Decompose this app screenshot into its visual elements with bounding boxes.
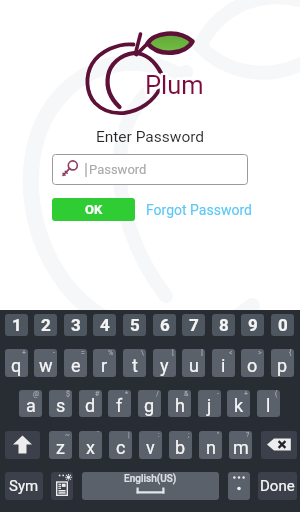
button[interactable]: a [19,390,42,417]
staticText: v [146,437,155,458]
staticText: 9 [248,315,258,335]
button[interactable]: 4 [93,314,116,336]
staticText: Plum [142,70,201,100]
button[interactable]: OK [52,198,135,221]
button[interactable]: i [212,349,235,377]
staticText: @ [33,390,40,398]
staticText: Forgot Password [146,202,252,218]
staticText: Plum [145,73,204,103]
staticText: { [289,349,292,357]
staticText: ~ [65,431,70,439]
button[interactable]: 6 [153,314,176,336]
button[interactable]: b [169,431,192,459]
button[interactable]: 5 [123,314,146,336]
staticText: [ [172,349,174,357]
button[interactable]: u [182,349,205,377]
staticText: 6 [160,315,170,335]
staticText: d [85,395,96,416]
staticText: Plum [145,72,204,102]
button[interactable]: v [139,431,162,459]
button[interactable]: k [227,390,250,417]
staticText: i [221,355,226,376]
button[interactable]: y [153,349,176,377]
button[interactable]: Password [52,154,248,185]
button[interactable]: h [168,390,191,417]
button[interactable]: s [49,390,72,417]
staticText: Sym [9,477,39,495]
button[interactable]: Forgot Password [146,198,256,221]
button[interactable]: z [49,431,72,459]
button[interactable]: Sym [5,472,43,500]
button[interactable]: l [257,390,280,417]
staticText: - [217,390,219,398]
button[interactable]: Backspace [261,431,297,459]
staticText: ? [246,431,250,439]
staticText: z [56,437,65,458]
button[interactable]: Done [258,472,297,500]
staticText: Plum [145,70,204,100]
staticText: English(US) [124,473,177,485]
button[interactable]: q [5,349,28,377]
staticText: = [81,349,85,357]
staticText: Plum [145,68,204,98]
button[interactable]: 1 [5,314,28,336]
staticText: Plum [146,70,205,100]
staticText: Plum [146,69,205,99]
button[interactable]: r [93,349,116,377]
staticText: % [108,349,114,357]
staticText: * [125,390,129,398]
button[interactable]: Shift [5,431,40,459]
staticText: & [184,390,189,398]
staticText: < [229,349,233,357]
button[interactable]: 7 [182,314,205,336]
staticText: p [277,355,288,376]
staticText: n [206,437,216,458]
button[interactable]: Input settings [51,472,73,500]
button[interactable]: m [229,431,252,459]
staticText: : [158,431,160,439]
staticText: OK [85,202,103,217]
button[interactable]: f [108,390,131,417]
button[interactable]: 8 [212,314,235,336]
button[interactable]: t [123,349,146,377]
staticText: o [247,355,258,376]
button[interactable]: 9 [241,314,264,336]
button[interactable]: x [79,431,102,459]
staticText: / [156,390,159,398]
staticText: Plum [146,72,205,102]
button[interactable]: 2 [34,314,57,336]
button[interactable]: n [199,431,222,459]
button[interactable]: Space [82,472,219,500]
staticText: Plum [146,68,205,98]
button[interactable]: j [198,390,221,417]
staticText: $ [66,390,70,398]
button[interactable]: p [271,349,294,377]
staticText: Enter Password [0,128,300,146]
staticText: ] [201,349,203,357]
staticText: Plum [148,70,207,100]
button[interactable]: Period [228,472,250,500]
staticText: r [101,355,108,376]
button[interactable]: 3 [64,314,87,336]
staticText: Plum [143,68,202,98]
staticText: 3 [71,315,81,335]
staticText: f [116,395,123,416]
staticText: Plum [144,71,203,101]
staticText: Plum [144,68,203,98]
button[interactable]: o [241,349,264,377]
button[interactable]: c [109,431,132,459]
staticText: u [189,355,199,376]
staticText: + [22,349,26,357]
button[interactable]: 0 [271,314,294,336]
staticText: - [53,349,55,357]
button[interactable]: g [138,390,161,417]
button[interactable]: w [34,349,57,377]
staticText: Plum [143,72,202,102]
staticText: l [266,395,271,416]
staticText: 4 [100,315,110,335]
button[interactable]: e [64,349,87,377]
staticText: Plum [145,70,204,100]
button[interactable]: d [79,390,102,417]
staticText: j [207,395,212,416]
staticText: Plum [144,69,203,99]
